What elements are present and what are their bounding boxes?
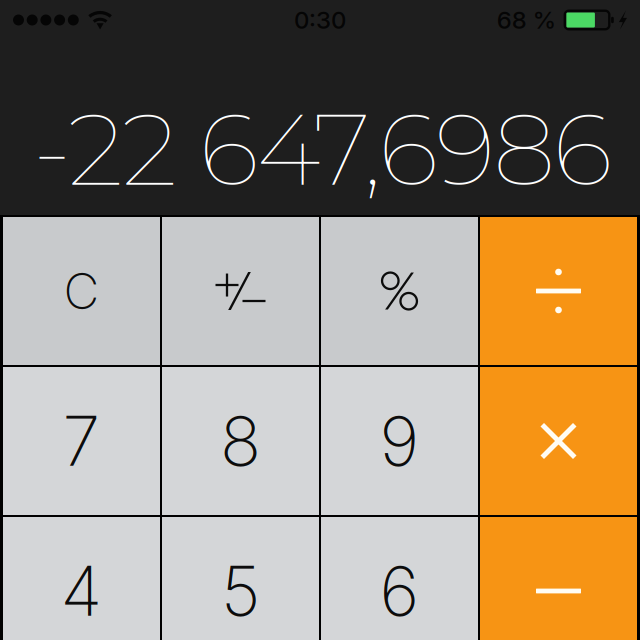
button[interactable]: Clear [3,217,160,365]
button[interactable]: 4 [3,517,160,640]
staticText: 0:30 [294,5,346,34]
staticText: 8 [220,400,261,482]
button[interactable]: 7 [3,367,160,515]
button[interactable]: 5 [162,517,319,640]
button[interactable]: 9 [321,367,478,515]
staticText: -22 647,6986 [33,88,612,210]
button[interactable]: 8 [162,367,319,515]
button[interactable]: Plus minus [162,217,319,365]
staticText: 7 [62,400,100,482]
button[interactable]: Percent [321,217,478,365]
button[interactable]: Divide [480,217,637,365]
staticText: 9 [379,400,419,482]
button[interactable]: Multiply [480,367,637,515]
staticText: 68 % [497,5,556,34]
staticText: C [63,261,99,321]
staticText: 5 [221,550,260,632]
staticText: 4 [60,550,102,632]
button[interactable]: 6 [321,517,478,640]
button[interactable]: Subtract [480,517,637,640]
staticText: 6 [379,550,419,632]
